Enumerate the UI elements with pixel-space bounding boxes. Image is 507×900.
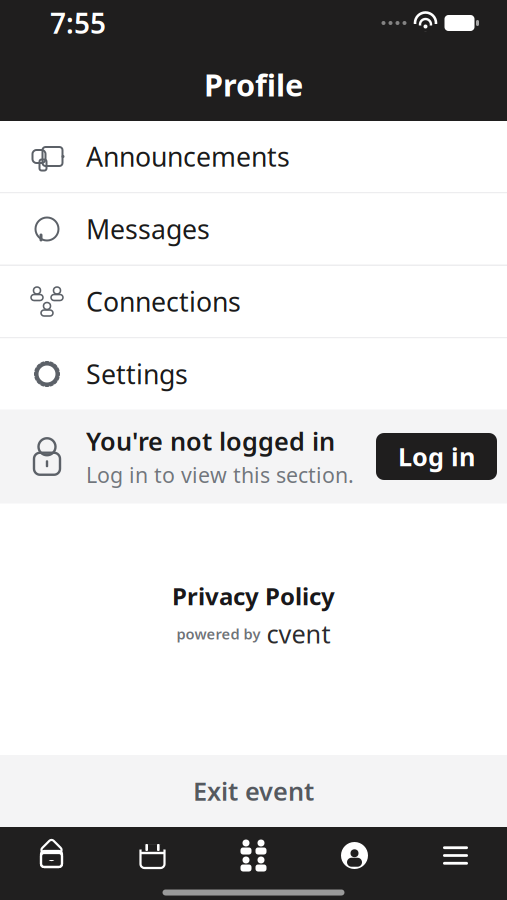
- button[interactable]: Messages: [0, 193, 507, 264]
- staticText: Log in: [398, 440, 475, 473]
- staticText: powered by: [176, 624, 260, 643]
- button[interactable]: Exit event: [0, 755, 507, 827]
- button[interactable]: Schedule: [102, 829, 203, 881]
- staticText: 7:55: [50, 4, 106, 42]
- button[interactable]: Profile: [304, 829, 405, 881]
- staticText: Privacy Policy: [172, 580, 335, 612]
- staticText: Log in to view this section.: [86, 461, 354, 489]
- staticText: Messages: [86, 211, 210, 247]
- staticText: You're not logged in: [86, 424, 335, 458]
- button[interactable]: Connections: [0, 266, 507, 337]
- staticText: Exit event: [193, 774, 314, 808]
- staticText: Profile: [204, 64, 303, 105]
- button[interactable]: Privacy Policy: [172, 580, 335, 612]
- staticText: cvent: [266, 617, 330, 650]
- button[interactable]: Announcements: [0, 121, 507, 192]
- button[interactable]: Attendees: [203, 829, 304, 881]
- button[interactable]: Home: [1, 829, 102, 881]
- staticText: Connections: [86, 284, 241, 319]
- button[interactable]: Log in: [376, 433, 497, 480]
- button[interactable]: More: [405, 829, 506, 881]
- staticText: Announcements: [86, 139, 290, 174]
- staticText: Settings: [86, 356, 188, 392]
- button[interactable]: Settings: [0, 338, 507, 409]
